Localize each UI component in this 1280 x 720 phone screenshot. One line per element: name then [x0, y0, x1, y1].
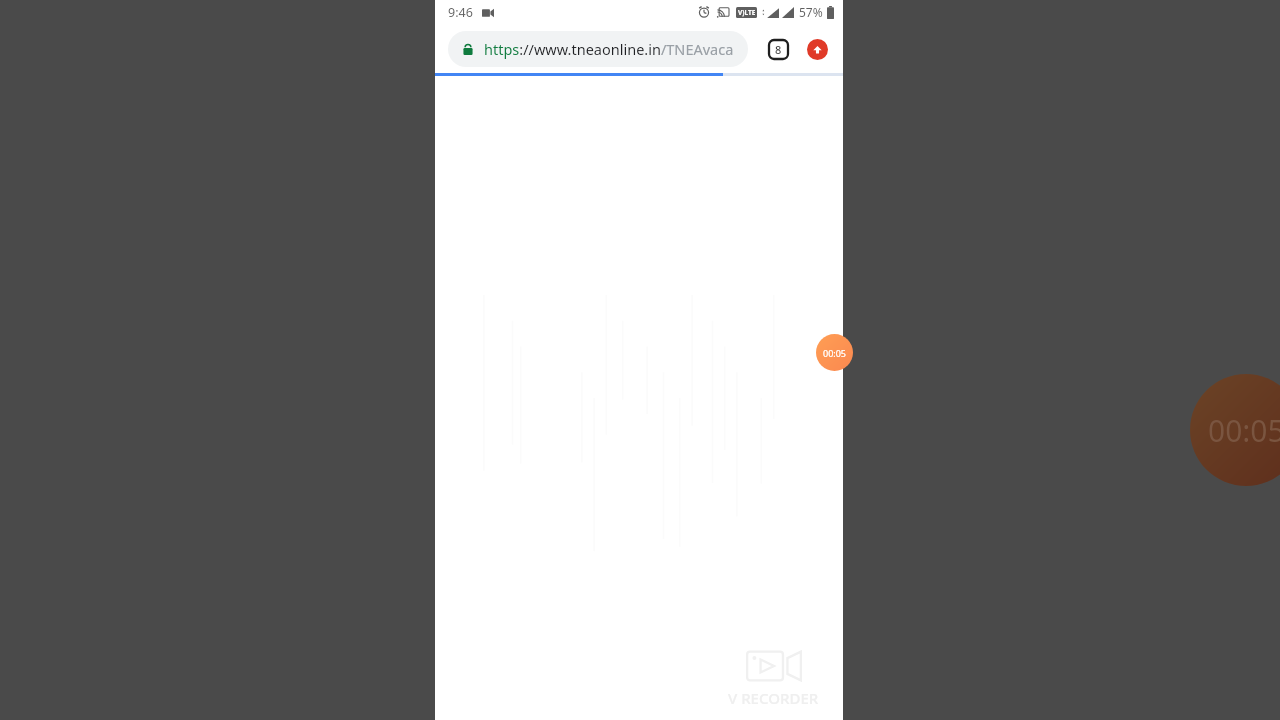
- staticText: 57%: [799, 4, 823, 20]
- button[interactable]: https://www.tneaonline.in/TNEAvaca: [448, 31, 748, 67]
- button[interactable]: Tabs, 8 open: [762, 33, 794, 65]
- button[interactable]: Recording timer 00:05: [816, 334, 853, 371]
- button[interactable]: Scroll to top: [801, 33, 833, 65]
- staticText: 00:05: [1208, 410, 1280, 451]
- staticText: 8: [775, 42, 782, 57]
- staticText: 00:05: [823, 347, 847, 359]
- staticText: https://www.tneaonline.in/TNEAvaca: [484, 39, 734, 59]
- staticText: V RECORDER: [728, 688, 819, 708]
- staticText: V)LTE: [738, 8, 756, 17]
- staticText: 9:46: [448, 4, 473, 21]
